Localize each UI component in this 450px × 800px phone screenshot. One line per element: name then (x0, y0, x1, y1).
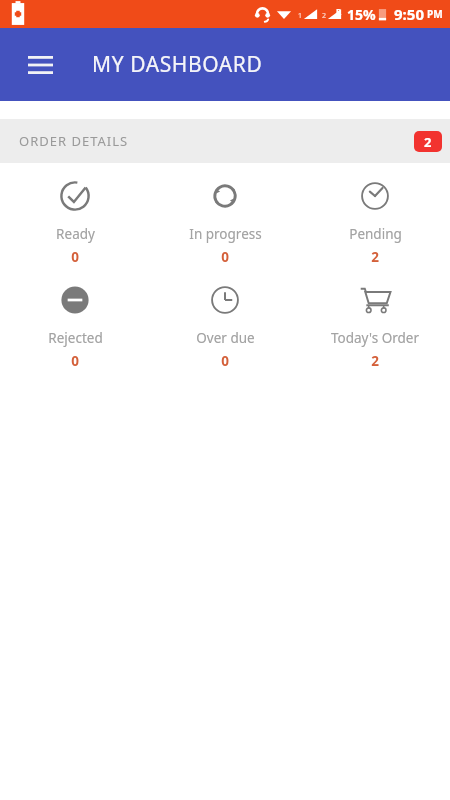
staticText: R (336, 6, 342, 17)
button[interactable]: Open navigation menu (16, 41, 64, 89)
staticText: 2 (371, 248, 379, 266)
staticText: Rejected (48, 329, 103, 347)
staticText: 2 (371, 352, 379, 370)
staticText: 0 (71, 248, 79, 266)
staticText: Over due (196, 329, 255, 347)
staticText: Ready (56, 225, 95, 243)
staticText: PM (427, 7, 443, 21)
staticText: 15% (347, 5, 376, 24)
button[interactable]: In progress (150, 177, 300, 268)
button[interactable]: Over due (150, 281, 300, 372)
staticText: 0 (71, 352, 79, 370)
staticText: 1 (298, 11, 303, 21)
button[interactable]: Pending (300, 177, 450, 268)
button[interactable]: Ready (0, 177, 150, 268)
staticText: 0 (221, 352, 229, 370)
button[interactable]: Today's Order (300, 281, 450, 372)
button[interactable]: Rejected (0, 281, 150, 372)
staticText: Pending (349, 225, 402, 243)
staticText: 0 (221, 248, 229, 266)
staticText: In progress (189, 225, 262, 243)
staticText: 9:50 (394, 4, 424, 24)
staticText: 2 (424, 133, 432, 151)
staticText: ORDER DETAILS (19, 132, 129, 150)
staticText: MY DASHBOARD (92, 50, 263, 79)
staticText: Today's Order (331, 329, 419, 347)
button[interactable]: ORDER DETAILS (0, 119, 450, 163)
staticText: 2 (322, 11, 327, 21)
